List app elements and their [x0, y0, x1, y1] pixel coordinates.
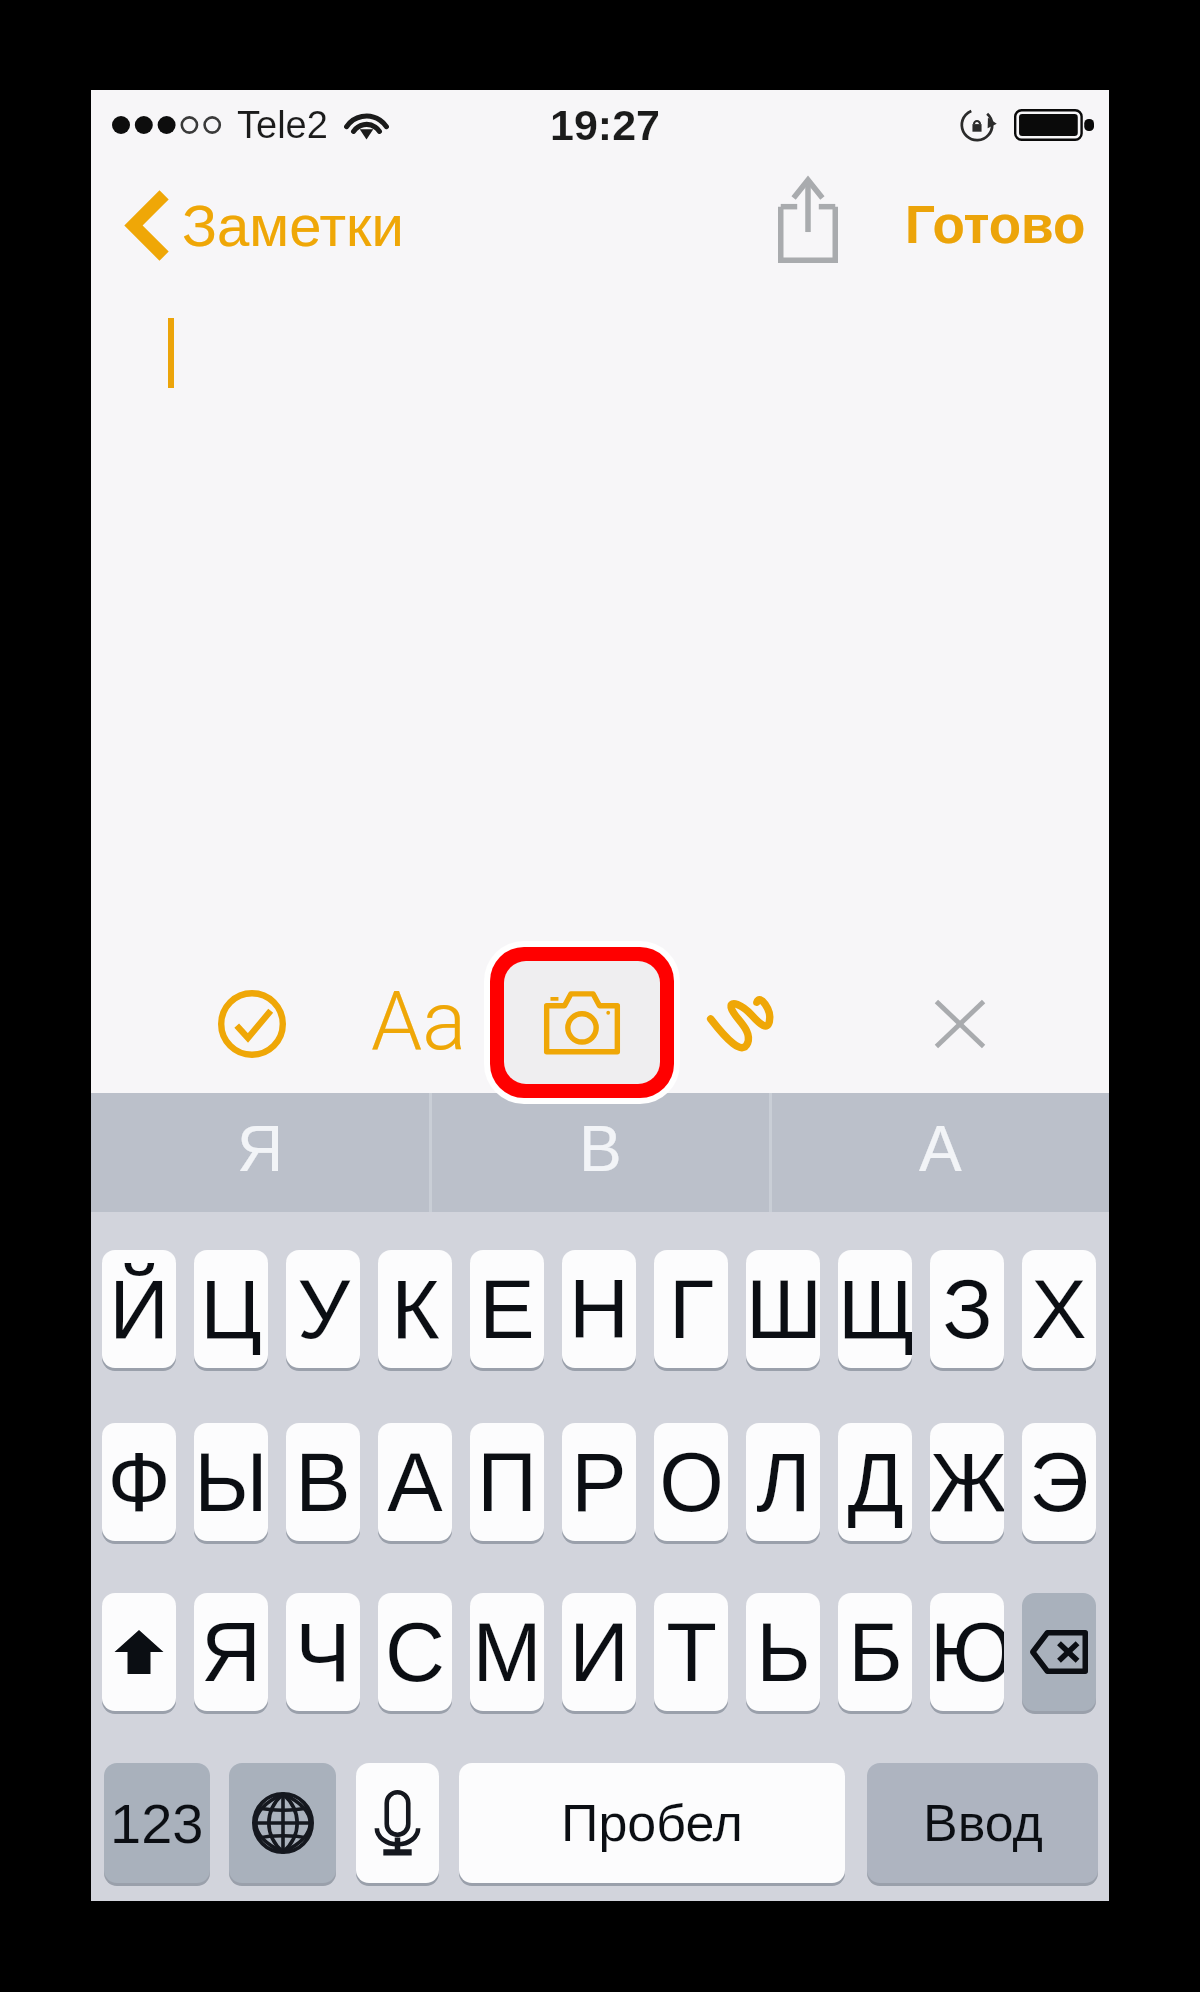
staticText: Ж: [930, 1436, 1004, 1529]
staticText: Aa: [371, 973, 467, 1069]
button[interactable]: У: [286, 1250, 360, 1368]
staticText: Я: [237, 1113, 284, 1185]
button[interactable]: А: [378, 1423, 452, 1541]
staticText: Т: [666, 1606, 717, 1699]
button[interactable]: Ц: [194, 1250, 268, 1368]
staticText: Й: [109, 1263, 169, 1356]
button[interactable]: З: [930, 1250, 1004, 1368]
button[interactable]: Заметки: [119, 185, 412, 265]
staticText: Пробел: [561, 1794, 743, 1852]
staticText: Ю: [930, 1606, 1004, 1699]
button[interactable]: Switch language: [229, 1763, 336, 1883]
staticText: О: [659, 1436, 724, 1529]
button[interactable]: Format text: [329, 954, 509, 1087]
button[interactable]: Я: [91, 1093, 429, 1212]
staticText: 19:27: [550, 101, 660, 149]
staticText: Ш: [746, 1263, 820, 1356]
button[interactable]: Backspace: [1022, 1593, 1096, 1711]
staticText: М: [472, 1606, 542, 1699]
staticText: А: [919, 1113, 962, 1185]
staticText: Готово: [905, 195, 1086, 254]
button[interactable]: Ш: [746, 1250, 820, 1368]
staticText: Я: [201, 1606, 261, 1699]
staticText: 123: [110, 1792, 204, 1855]
button[interactable]: Э: [1022, 1423, 1096, 1541]
button[interactable]: Т: [654, 1593, 728, 1711]
button[interactable]: Dictation: [356, 1763, 439, 1883]
staticText: И: [569, 1606, 629, 1699]
button[interactable]: Ф: [102, 1423, 176, 1541]
staticText: Э: [1029, 1436, 1089, 1529]
button[interactable]: О: [654, 1423, 728, 1541]
staticText: Ь: [756, 1606, 811, 1699]
button[interactable]: Share: [748, 157, 868, 283]
staticText: П: [477, 1436, 537, 1529]
button[interactable]: Л: [746, 1423, 820, 1541]
button[interactable]: Ч: [286, 1593, 360, 1711]
button[interactable]: В: [286, 1423, 360, 1541]
staticText: С: [385, 1606, 445, 1699]
staticText: Р: [571, 1436, 627, 1529]
staticText: Д: [847, 1436, 904, 1529]
staticText: Г: [669, 1263, 714, 1356]
button[interactable]: Б: [838, 1593, 912, 1711]
button[interactable]: И: [562, 1593, 636, 1711]
button[interactable]: В: [432, 1093, 769, 1212]
staticText: З: [942, 1263, 993, 1356]
staticText: Tele2: [237, 104, 328, 146]
button[interactable]: Р: [562, 1423, 636, 1541]
button[interactable]: Draw: [651, 957, 831, 1090]
button[interactable]: М: [470, 1593, 544, 1711]
button[interactable]: Н: [562, 1250, 636, 1368]
button[interactable]: Ы: [194, 1423, 268, 1541]
staticText: Ввод: [923, 1794, 1043, 1852]
staticText: Ф: [107, 1436, 171, 1529]
button[interactable]: П: [470, 1423, 544, 1541]
staticText: Ч: [295, 1606, 351, 1699]
button[interactable]: Е: [470, 1250, 544, 1368]
button[interactable]: Х: [1022, 1250, 1096, 1368]
staticText: К: [391, 1263, 440, 1356]
button[interactable]: Ь: [746, 1593, 820, 1711]
button[interactable]: К: [378, 1250, 452, 1368]
staticText: Е: [479, 1263, 535, 1356]
staticText: А: [387, 1436, 443, 1529]
button[interactable]: Г: [654, 1250, 728, 1368]
staticText: Заметки: [182, 193, 404, 258]
staticText: Х: [1031, 1263, 1087, 1356]
button[interactable]: Й: [102, 1250, 176, 1368]
staticText: Б: [848, 1606, 903, 1699]
button[interactable]: С: [378, 1593, 452, 1711]
button[interactable]: Shift: [102, 1593, 176, 1711]
staticText: Ц: [200, 1263, 262, 1356]
staticText: В: [579, 1113, 622, 1185]
button[interactable]: Checklist: [157, 957, 347, 1090]
staticText: В: [295, 1436, 351, 1529]
button[interactable]: Готово: [884, 174, 1106, 274]
staticText: Ы: [194, 1436, 268, 1529]
button[interactable]: Д: [838, 1423, 912, 1541]
button[interactable]: Camera: [504, 961, 660, 1084]
staticText: У: [297, 1263, 350, 1356]
staticText: Л: [756, 1436, 811, 1529]
staticText: Н: [569, 1263, 629, 1356]
button[interactable]: 123: [104, 1763, 210, 1883]
button[interactable]: Я: [194, 1593, 268, 1711]
button[interactable]: Пробел: [459, 1763, 845, 1883]
button[interactable]: Ввод: [867, 1763, 1098, 1883]
button[interactable]: Щ: [838, 1250, 912, 1368]
button[interactable]: Close keyboard: [865, 957, 1055, 1090]
staticText: Щ: [838, 1263, 912, 1356]
button[interactable]: Ю: [930, 1593, 1004, 1711]
button[interactable]: Ж: [930, 1423, 1004, 1541]
button[interactable]: А: [772, 1093, 1109, 1212]
